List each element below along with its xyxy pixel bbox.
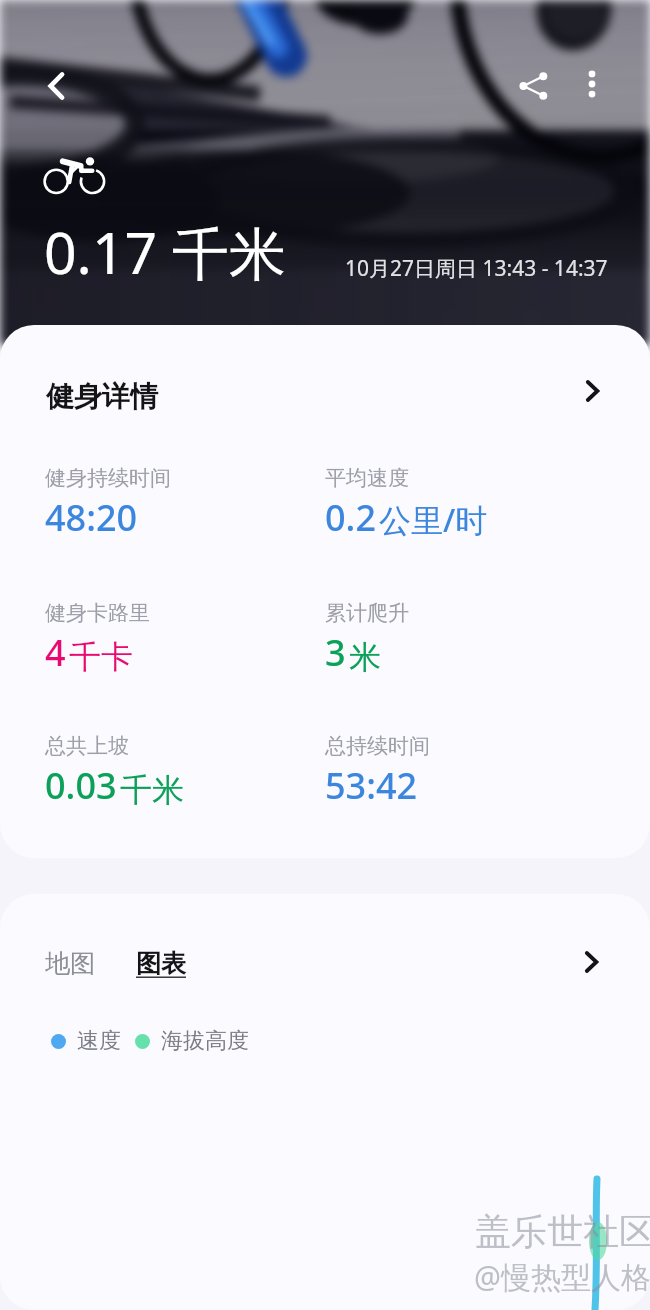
staticText: 0.03 xyxy=(45,761,117,810)
button[interactable]: More options xyxy=(566,58,618,110)
button[interactable]: Share xyxy=(506,58,562,114)
staticText: 速度 xyxy=(77,1027,121,1055)
staticText: @慢热型人格 xyxy=(474,1256,650,1297)
staticText: 48:20 xyxy=(45,493,138,542)
staticText: 地图 xyxy=(45,948,95,979)
staticText: 总持续时间 xyxy=(325,733,430,759)
staticText: 千米 xyxy=(120,770,184,810)
staticText: 健身持续时间 xyxy=(45,465,171,491)
staticText: 总共上坡 xyxy=(45,733,129,759)
button[interactable]: 地图 xyxy=(0,948,101,979)
button[interactable]: 健身详情 xyxy=(0,325,650,435)
staticText: 53:42 xyxy=(325,761,418,810)
staticText: 海拔高度 xyxy=(161,1027,249,1055)
staticText: 米 xyxy=(349,637,381,677)
staticText: 健身卡路里 xyxy=(45,600,150,626)
staticText: 健身详情 xyxy=(46,379,158,414)
staticText: 图表 xyxy=(136,948,186,979)
staticText: 盖乐世社区 xyxy=(475,1209,650,1254)
staticText: 千卡 xyxy=(69,637,133,677)
staticText: 公里/时 xyxy=(379,498,488,542)
staticText: 0.2 xyxy=(325,493,376,542)
staticText: 平均速度 xyxy=(325,465,409,491)
staticText: 4 xyxy=(45,628,66,677)
staticText: 0.17 千米 xyxy=(44,213,286,291)
staticText: 10月27日周日 13:43 - 14:37 xyxy=(345,254,608,283)
button[interactable]: Back xyxy=(29,58,85,114)
button[interactable]: Open chart xyxy=(574,945,608,979)
staticText: 3 xyxy=(325,628,346,677)
staticText: 累计爬升 xyxy=(325,600,409,626)
button[interactable]: 图表 xyxy=(136,948,192,979)
